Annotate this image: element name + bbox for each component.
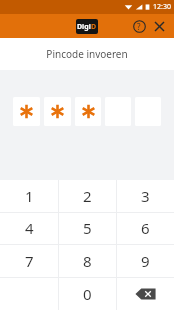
button[interactable]: 7 <box>0 244 58 277</box>
button[interactable]: Help <box>130 17 148 35</box>
staticText: 2 <box>83 186 92 206</box>
button[interactable]: 6 <box>116 212 174 244</box>
staticText: 4 <box>25 218 34 238</box>
staticText: 0 <box>83 284 92 304</box>
button[interactable]: 8 <box>58 244 116 277</box>
staticText: 5 <box>83 218 92 238</box>
button[interactable]: 5 <box>58 212 116 244</box>
staticText: 12:30 <box>153 2 171 12</box>
staticText: D <box>91 22 97 32</box>
staticText: 9 <box>141 251 150 271</box>
button[interactable]: DigiD <box>76 19 98 34</box>
button[interactable]: 9 <box>116 244 174 277</box>
staticText: 6 <box>141 218 150 238</box>
staticText: Digi <box>77 22 91 32</box>
staticText: 8 <box>83 251 92 271</box>
button[interactable]: 0 <box>58 277 116 310</box>
staticText: 3 <box>141 186 150 206</box>
button[interactable]: 4 <box>0 212 58 244</box>
button[interactable]: 2 <box>58 180 116 212</box>
staticText: 7 <box>25 251 34 271</box>
button[interactable]: 3 <box>116 180 174 212</box>
button[interactable]: 1 <box>0 180 58 212</box>
button[interactable]: Close <box>150 17 168 35</box>
staticText: Pincode invoeren <box>46 47 128 61</box>
staticText: ? <box>137 21 141 32</box>
button[interactable]: Backspace <box>116 277 174 310</box>
staticText: 1 <box>25 186 34 206</box>
